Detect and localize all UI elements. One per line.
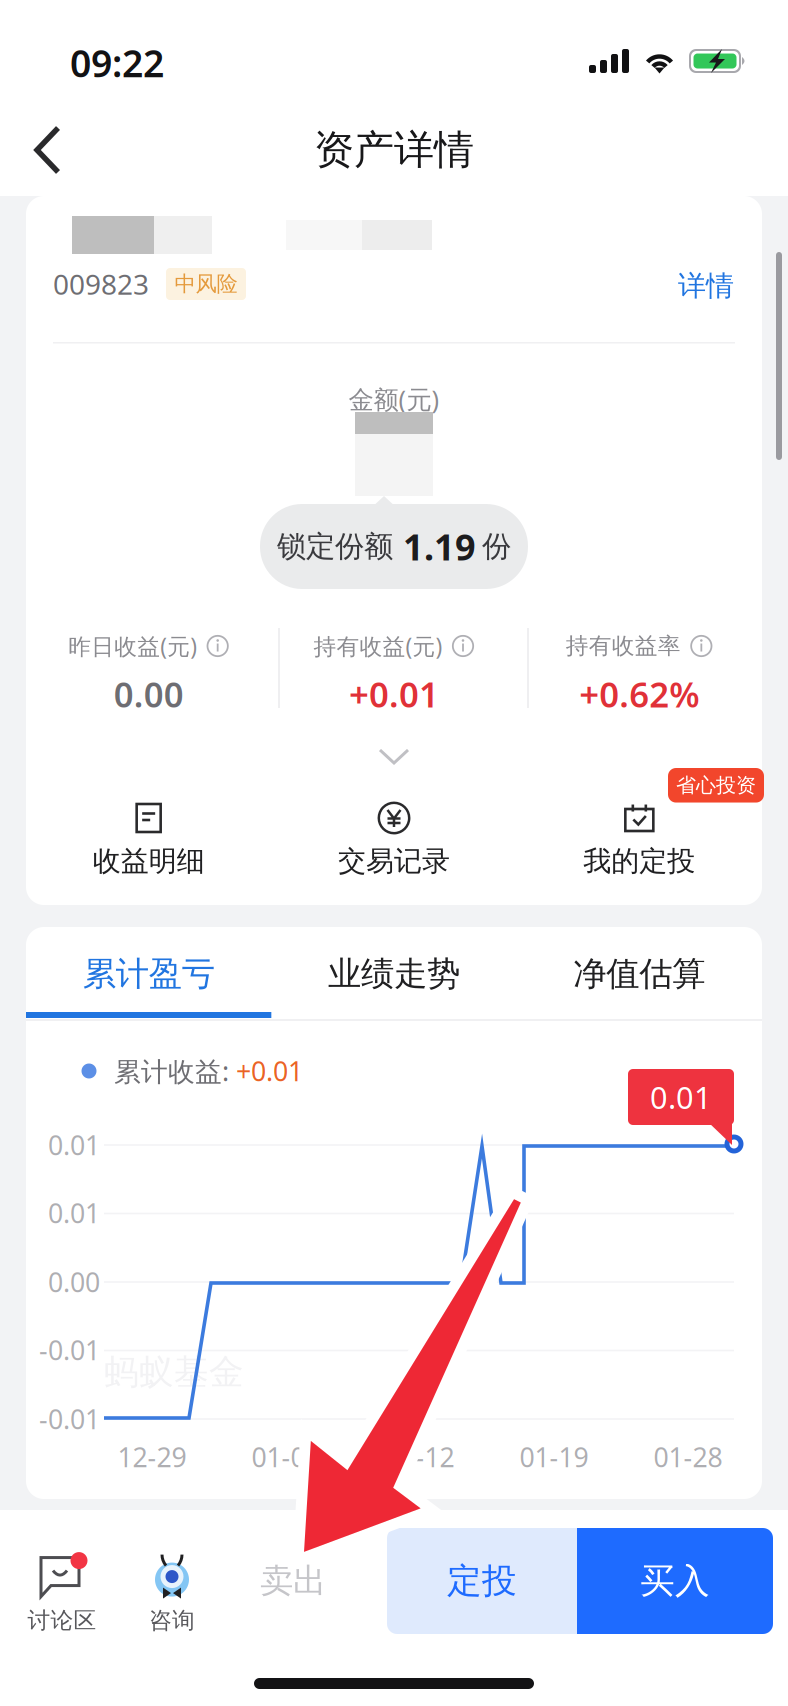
staticText: 累计盈亏 — [83, 953, 215, 994]
staticText: 我的定投 — [583, 844, 695, 878]
staticText: +0.01 — [349, 671, 439, 717]
staticText: 定投 — [447, 1560, 517, 1602]
button[interactable]: 累计盈亏 — [26, 927, 271, 1021]
staticText: 0.01 — [48, 1127, 100, 1163]
staticText: 卖出 — [260, 1560, 326, 1601]
staticText: 持有收益(元) — [313, 631, 442, 661]
staticText: +0.62% — [579, 671, 699, 717]
staticText: -0.01 — [39, 1401, 100, 1437]
button[interactable]: 定投 — [387, 1528, 577, 1634]
button[interactable]: 详情 — [624, 258, 734, 314]
staticText: 昨日收益(元) — [68, 631, 197, 661]
staticText: 01-12 — [385, 1439, 454, 1475]
button[interactable]: 卖出 — [228, 1528, 358, 1634]
staticText: 详情 — [678, 269, 734, 303]
staticText: 持有收益率 — [566, 632, 681, 660]
button[interactable]: Back — [0, 104, 96, 196]
staticText: 01-19 — [519, 1439, 588, 1475]
staticText: 0.00 — [114, 671, 184, 717]
staticText: 资产详情 — [314, 125, 474, 174]
staticText: 累计收益: — [114, 1053, 236, 1089]
staticText: 01-28 — [653, 1439, 722, 1475]
button[interactable]: 净值估算 — [517, 927, 762, 1021]
staticText: 省心投资 — [676, 773, 756, 798]
staticText: 净值估算 — [573, 953, 705, 994]
staticText: 业绩走势 — [328, 953, 460, 994]
button[interactable]: 我的定投 — [517, 801, 762, 901]
staticText: 蚂蚁基金 — [104, 1351, 244, 1394]
button[interactable]: 买入 — [577, 1528, 773, 1634]
staticText: 收益明细 — [93, 844, 205, 878]
staticText: 金额(元) — [348, 382, 439, 416]
staticText: 0.01 — [650, 1077, 712, 1117]
staticText: 12-29 — [117, 1439, 186, 1475]
staticText: +0.01 — [236, 1053, 303, 1089]
staticText: 买入 — [640, 1560, 710, 1602]
staticText: 讨论区 — [27, 1607, 96, 1634]
staticText: 09:22 — [70, 38, 164, 88]
button[interactable]: 咨询 — [118, 1532, 226, 1656]
button[interactable]: 讨论区 — [8, 1532, 116, 1656]
staticText: 0.01 — [48, 1195, 100, 1231]
staticText: 01-05 — [251, 1439, 320, 1475]
button[interactable]: 业绩走势 — [271, 927, 517, 1021]
staticText: 中风险 — [174, 271, 237, 297]
staticText: 交易记录 — [338, 844, 450, 878]
button[interactable]: 收益明细 — [26, 801, 271, 901]
staticText: 锁定份额 — [277, 528, 393, 564]
staticText: 份 — [482, 528, 511, 564]
staticText: 1.19 — [403, 523, 476, 570]
staticText: 009823 — [53, 265, 149, 303]
button[interactable]: 交易记录 — [271, 801, 517, 901]
staticText: -0.01 — [39, 1332, 100, 1368]
staticText: 0.00 — [48, 1264, 100, 1300]
staticText: 咨询 — [149, 1607, 195, 1634]
